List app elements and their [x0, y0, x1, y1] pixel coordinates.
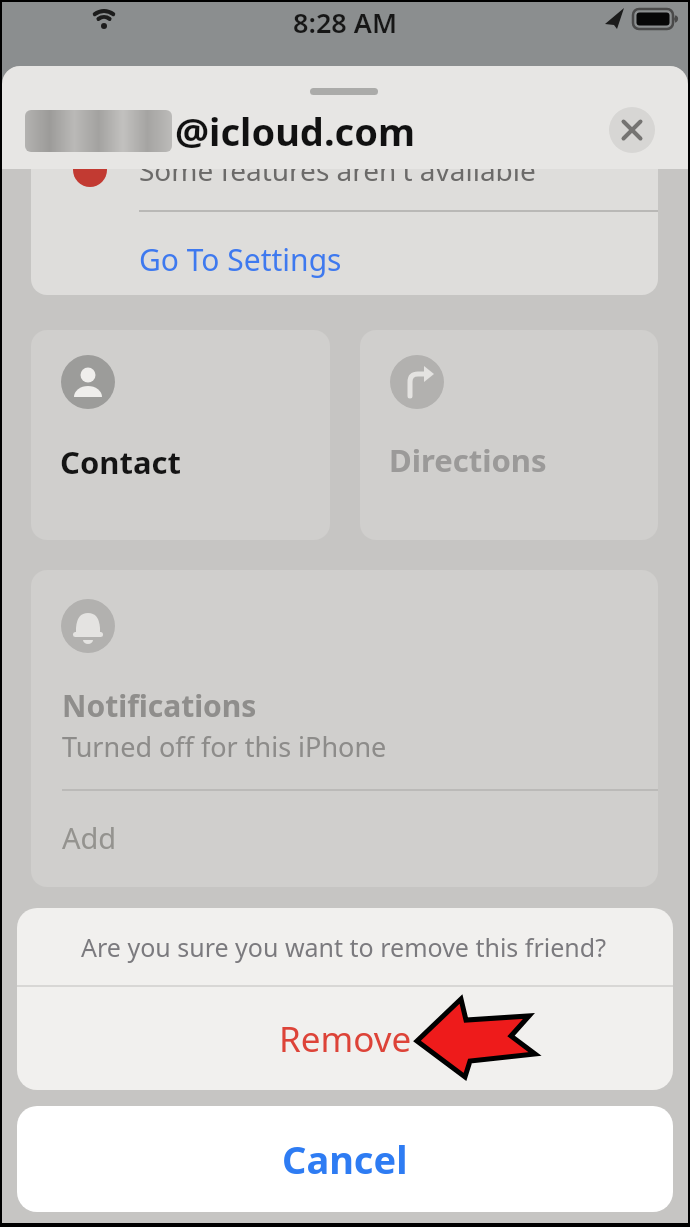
button[interactable]	[131, 230, 391, 280]
staticText: Cancel	[282, 1133, 408, 1185]
staticText: Contact	[60, 441, 181, 483]
staticText: Notifications	[62, 685, 257, 726]
staticText: 8:28 AM	[293, 4, 398, 41]
staticText: Are you sure you want to remove this fri…	[81, 930, 606, 964]
button[interactable]: Cancel	[17, 1106, 673, 1212]
staticText: Some features aren't available	[139, 151, 536, 189]
button[interactable]	[51, 805, 251, 865]
staticText: Directions	[389, 439, 547, 481]
button[interactable]: Contact	[31, 330, 330, 540]
staticText: Remove	[279, 1015, 412, 1063]
staticText: Go To Settings	[139, 239, 342, 280]
button[interactable]	[609, 107, 655, 153]
staticText: Turned off for this iPhone	[62, 728, 387, 765]
button[interactable]: Remove	[17, 987, 673, 1090]
staticText: @icloud.com	[175, 105, 415, 157]
staticText: Add	[62, 818, 117, 857]
button[interactable]: Directions	[360, 330, 658, 540]
